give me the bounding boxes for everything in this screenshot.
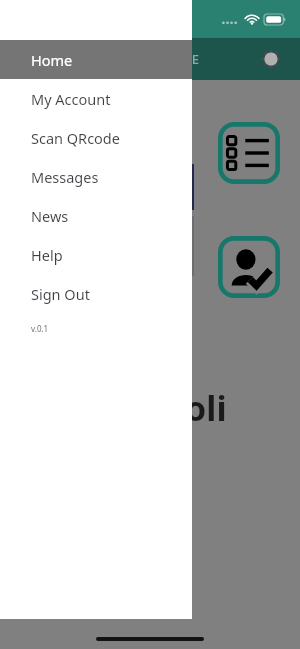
staticText: News — [31, 206, 69, 226]
staticText: Messages — [31, 167, 99, 187]
button[interactable]: My Account — [0, 79, 192, 118]
button[interactable]: UPDATE — [150, 50, 199, 68]
button[interactable]: Messages — [0, 157, 192, 196]
button[interactable]: Help — [0, 235, 192, 274]
button[interactable]: News — [0, 196, 192, 235]
staticText: My Account — [31, 89, 111, 109]
button[interactable]: Settings — [256, 44, 286, 74]
staticText: Help — [31, 245, 63, 265]
button[interactable]: Scan QRcode — [0, 118, 192, 157]
staticText: v.0.1 — [31, 323, 49, 334]
button[interactable]: Verified user — [218, 236, 280, 298]
button[interactable]: Sign Out — [0, 274, 192, 313]
staticText: Home — [31, 50, 73, 70]
staticText: oli — [185, 385, 227, 431]
staticText: Sign Out — [31, 284, 90, 304]
staticText: Scan QRcode — [31, 128, 120, 148]
button[interactable]: Home — [0, 40, 192, 79]
button[interactable]: Checklist — [218, 122, 280, 184]
